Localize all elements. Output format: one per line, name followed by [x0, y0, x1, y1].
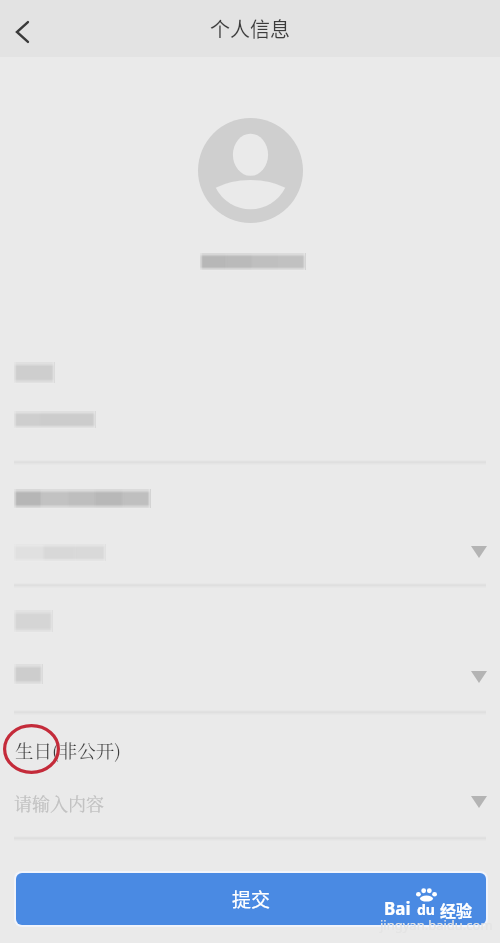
staticText: 提交 [232, 885, 271, 913]
button[interactable]: Back [0, 9, 44, 53]
staticText: Bai [384, 897, 411, 920]
staticText: du [417, 900, 435, 919]
staticText: 请输入内容 [14, 790, 104, 816]
staticText: 生日(非公开) [15, 737, 121, 764]
button[interactable]: 请输入内容 [14, 780, 486, 826]
staticText: jingyan.baidu.com [380, 916, 493, 934]
staticText: 个人信息 [210, 14, 290, 43]
staticText: 经验 [440, 898, 473, 921]
button[interactable]: 提交 [16, 873, 486, 925]
